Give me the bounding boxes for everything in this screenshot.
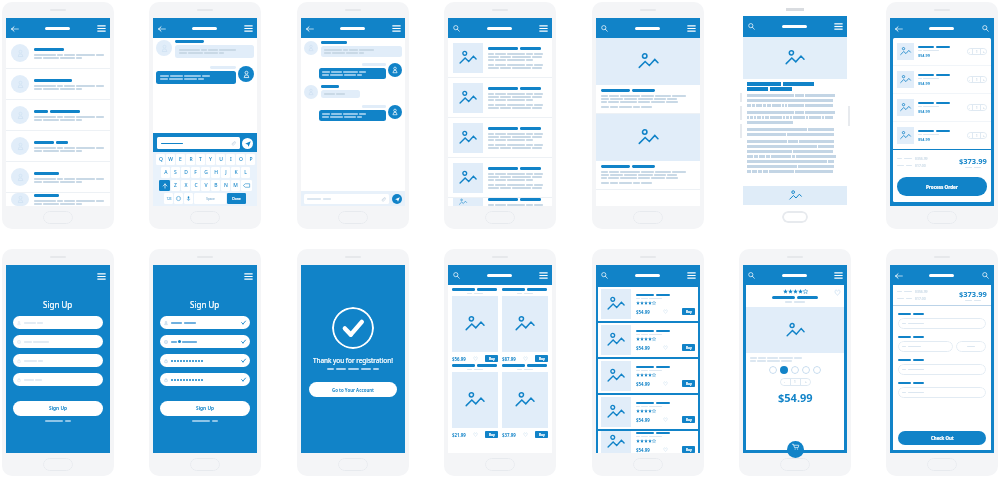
button[interactable]: Buy [682,380,695,387]
button[interactable]: G [201,167,210,178]
button[interactable] [956,341,986,352]
button[interactable]: $54.99 [893,66,991,93]
button[interactable]: Process Order [897,177,987,196]
button[interactable]: D [181,167,190,178]
button[interactable] [13,316,103,329]
button[interactable] [6,100,110,130]
button[interactable] [304,194,389,204]
button[interactable]: Favorite [473,356,478,361]
button[interactable]: Z [171,180,180,191]
button[interactable]: M [231,180,240,191]
button[interactable]: Emoji [174,193,183,204]
button[interactable]: O [236,154,245,165]
button[interactable] [596,38,700,114]
button[interactable] [448,198,552,206]
button[interactable]: C [191,180,200,191]
button[interactable]: $54.99 [598,287,698,321]
button[interactable]: Buy [682,446,695,453]
button[interactable] [6,131,110,161]
button[interactable]: $54.99 [598,359,698,393]
button[interactable]: Search [747,22,756,31]
button[interactable]: Menu [687,271,696,280]
button[interactable]: Search [981,271,990,280]
button[interactable]: Favorite [523,356,528,361]
button[interactable]: F [191,167,200,178]
button[interactable]: Search [452,271,461,280]
button[interactable]: $54.99 [598,323,698,357]
button[interactable] [6,162,110,192]
button[interactable]: V [201,180,210,191]
button[interactable]: $21.99 [452,364,498,438]
button[interactable]: Menu [243,271,253,281]
button[interactable] [813,366,821,374]
button[interactable]: Search [981,24,990,33]
button[interactable] [791,366,799,374]
button[interactable]: Menu [97,24,106,33]
button[interactable] [6,38,110,68]
button[interactable] [898,318,986,329]
button[interactable]: Back [157,24,166,33]
button[interactable] [898,387,986,398]
button[interactable] [160,373,250,386]
button[interactable]: Done [227,193,246,204]
button[interactable] [769,366,777,374]
button[interactable] [160,316,250,329]
button[interactable]: Favorite [834,289,841,296]
button[interactable]: Search [600,271,609,280]
button[interactable]: Shift [159,180,170,191]
button[interactable]: Menu [834,271,843,280]
button[interactable]: K [231,167,240,178]
button[interactable] [160,335,250,348]
button[interactable]: $87.99 [502,288,548,362]
button[interactable]: Back [894,271,903,280]
button[interactable]: J [221,167,230,178]
button[interactable] [898,341,953,352]
button[interactable]: B [211,180,220,191]
button[interactable]: S [171,167,180,178]
button[interactable]: L [241,167,250,178]
button[interactable]: $54.99 [893,38,991,65]
button[interactable]: Sign Up [160,401,250,416]
button[interactable]: Buy [535,355,548,362]
button[interactable]: Add to cart [787,441,804,458]
button[interactable]: $37.99 [502,364,548,438]
button[interactable] [13,373,103,386]
button[interactable]: Search [452,24,461,33]
button[interactable]: Back [894,24,903,33]
button[interactable]: P [246,154,255,165]
button[interactable]: Buy [485,431,498,438]
button[interactable]: R [186,154,195,165]
button[interactable]: Send [392,194,402,204]
button[interactable]: Favorite [523,432,528,437]
button[interactable]: Voice input [184,193,193,204]
button[interactable] [6,193,110,206]
button[interactable]: $54.99 [598,431,698,453]
button[interactable]: Favorite [663,417,668,422]
button[interactable]: $56.99 [452,288,498,362]
button[interactable]: T [196,154,205,165]
button[interactable]: Go to Your Account [309,382,397,397]
button[interactable] [448,78,552,117]
button[interactable] [448,118,552,157]
button[interactable]: Buy [682,416,695,423]
button[interactable]: Search [747,271,756,280]
button[interactable]: U [216,154,225,165]
button[interactable]: W [166,154,175,165]
button[interactable]: 123 [164,193,173,204]
button[interactable]: Menu [539,271,548,280]
button[interactable]: A [161,167,170,178]
button[interactable]: Search [600,24,609,33]
button[interactable] [160,354,250,367]
button[interactable]: I [226,154,235,165]
button[interactable] [898,364,986,375]
button[interactable]: Buy [682,308,695,315]
button[interactable] [13,354,103,367]
button[interactable] [448,158,552,197]
button[interactable]: Send [242,138,253,149]
button[interactable]: $54.99 [598,395,698,429]
button[interactable]: Y [206,154,215,165]
button[interactable]: Back [10,24,19,33]
button[interactable]: Favorite [663,345,668,350]
button[interactable]: Menu [539,24,548,33]
button[interactable]: Menu [244,24,253,33]
